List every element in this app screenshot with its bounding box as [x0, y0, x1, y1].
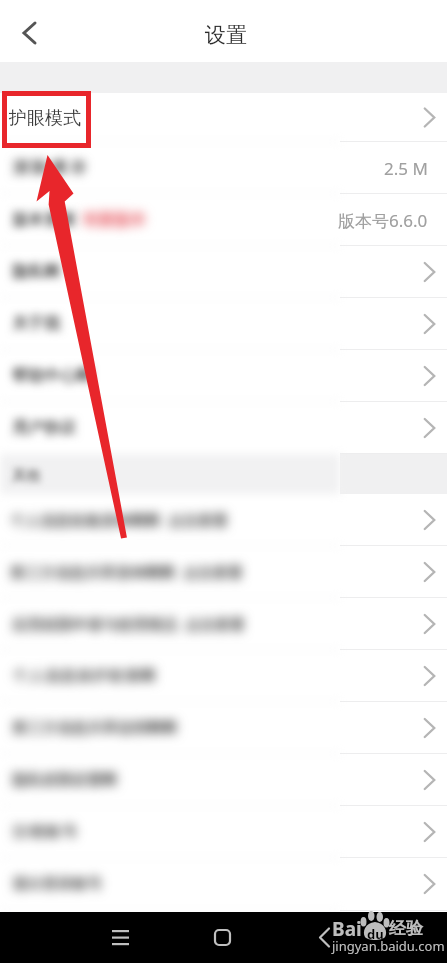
button[interactable]: 清除缓存 [0, 142, 447, 194]
staticText: 帮助中心啊 [12, 366, 92, 386]
staticText: jingyan.baidu.com [332, 937, 445, 955]
button[interactable]: Home [200, 915, 245, 960]
button[interactable]: Back [0, 4, 54, 58]
button[interactable]: 帮助中心啊 [0, 350, 447, 402]
staticText: 应用权限申请与使用情况 点击查看 [12, 614, 245, 634]
staticText: 隐私权限设置啊 [12, 771, 117, 790]
button[interactable]: Recent apps [98, 915, 143, 960]
staticText: 个人信息保护政策啊 [12, 667, 156, 686]
staticText: 清除缓存 [12, 158, 90, 178]
staticText: 设置 [205, 22, 247, 48]
button[interactable]: 关于我 [0, 298, 447, 350]
button[interactable]: 护眼模式 [0, 93, 447, 142]
button[interactable]: 隐私啊 [0, 246, 447, 298]
staticText: 隐私啊 [12, 262, 60, 282]
staticText: 版本号6.6.0 [338, 209, 428, 232]
button[interactable]: 注销账号 [0, 806, 447, 858]
staticText: 护眼模式 [9, 107, 81, 130]
staticText: 版本更新 [12, 210, 76, 230]
staticText: Bai [332, 916, 362, 942]
button[interactable]: 退出登录账号 [0, 858, 447, 910]
button[interactable]: 应用权限申请与使用情况 点击查看 [0, 598, 447, 650]
button[interactable]: 个人信息保护政策啊 [0, 650, 447, 702]
button[interactable]: 个人信息收集清单啊啊 点击查看 [0, 494, 447, 546]
button[interactable]: 版本更新 [0, 194, 447, 246]
staticText: 注销账号 [12, 823, 79, 842]
staticText: 个人信息收集清单啊啊 点击查看 [10, 510, 228, 530]
staticText: 2.5 M [384, 157, 428, 180]
staticText: 经验 [389, 918, 423, 939]
staticText: 有新版本 [82, 210, 146, 230]
button[interactable]: 用户协议 [0, 402, 447, 454]
staticText: 其他 [12, 467, 40, 485]
staticText: 第三方信息共享说明啊啊 [12, 719, 177, 738]
staticText: du [367, 925, 384, 943]
staticText: 关于我 [12, 314, 60, 334]
button[interactable]: 第三方信息共享说明啊啊 [0, 702, 447, 754]
staticText: 退出登录账号 [12, 875, 102, 894]
button[interactable]: 第三方信息共享清单啊啊 点击查看 [0, 546, 447, 598]
staticText: 第三方信息共享清单啊啊 点击查看 [10, 562, 243, 582]
button[interactable]: 隐私权限设置啊 [0, 754, 447, 806]
staticText: 用户协议 [12, 418, 76, 438]
button[interactable]: Back [302, 915, 347, 960]
